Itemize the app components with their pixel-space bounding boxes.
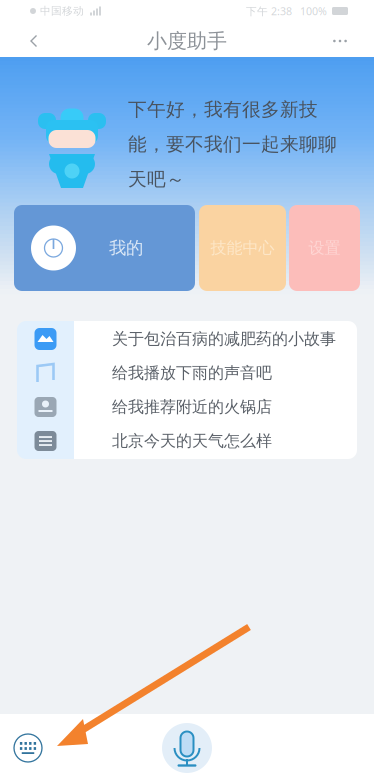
button[interactable]: 我的 [14, 205, 195, 291]
staticText: 下午好，我有很多新技 [128, 98, 318, 121]
button[interactable]: 关于包治百病的减肥药的小故事 [74, 322, 357, 356]
staticText: 100% [300, 4, 327, 18]
staticText: 设置 [308, 238, 340, 258]
staticText: 下午 2:38 [246, 4, 292, 18]
button[interactable]: 给我播放下雨的声音吧 [74, 356, 357, 390]
button[interactable]: 图标 [18, 390, 73, 424]
button[interactable]: 北京今天的天气怎么样 [74, 424, 357, 458]
staticText: 小度助手 [147, 29, 227, 53]
staticText: 能，要不我们一起来聊聊 [128, 133, 337, 156]
button[interactable]: 语音输入 [159, 720, 215, 776]
button[interactable]: 更多 [320, 22, 360, 60]
button[interactable]: 技能中心 [199, 205, 286, 291]
staticText: 天吧～ [128, 168, 185, 191]
button[interactable]: 设置 [289, 205, 360, 291]
staticText: 给我推荐附近的火锅店 [112, 397, 272, 417]
staticText: 北京今天的天气怎么样 [112, 431, 272, 451]
staticText: 中国移动 [40, 4, 84, 17]
staticText: 给我播放下雨的声音吧 [112, 363, 272, 383]
button[interactable]: 图标 [18, 424, 73, 458]
button[interactable]: 返回 [14, 22, 54, 60]
staticText: 关于包治百病的减肥药的小故事 [112, 329, 336, 349]
staticText: 我的 [109, 237, 143, 259]
button[interactable]: 图标 [18, 322, 73, 356]
button[interactable]: 给我推荐附近的火锅店 [74, 390, 357, 424]
button[interactable]: 图标 [18, 356, 73, 390]
button[interactable]: 键盘输入 [6, 722, 50, 774]
staticText: 技能中心 [210, 238, 274, 258]
